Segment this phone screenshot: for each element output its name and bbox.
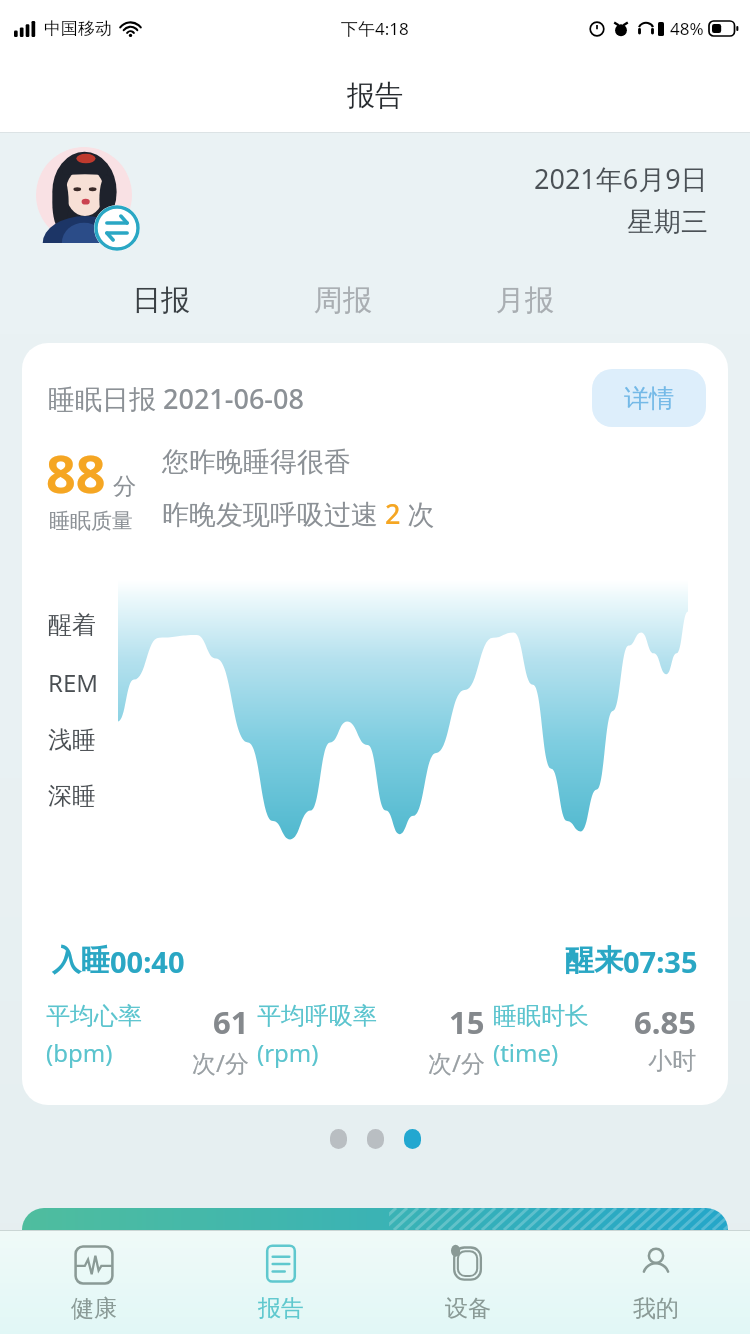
staticText: 61	[213, 1001, 249, 1043]
button[interactable]: 日报	[126, 275, 196, 325]
staticText: 深睡	[48, 781, 96, 811]
staticText: 醒来	[565, 942, 623, 979]
staticText: 次/分	[428, 1046, 485, 1079]
button[interactable]: 我的	[562, 1231, 750, 1334]
staticText: 07:35	[623, 942, 698, 981]
staticText: 48%	[670, 17, 704, 40]
staticText: 平均心率	[46, 1001, 142, 1031]
button[interactable]: 月报	[490, 275, 560, 325]
staticText: 下午4:18	[341, 17, 409, 40]
button[interactable]: 健康	[0, 1231, 187, 1334]
button[interactable]: 周报	[308, 275, 378, 325]
button[interactable]	[22, 1208, 728, 1230]
staticText: 浅睡	[48, 725, 96, 755]
staticText: 88	[46, 437, 106, 508]
staticText: 您昨晚睡得很香	[162, 445, 351, 479]
staticText: 我的	[633, 1294, 679, 1323]
staticText: 周报	[314, 282, 372, 319]
staticText: 健康	[71, 1294, 117, 1323]
button[interactable]: 设备	[374, 1231, 562, 1334]
staticText: 月报	[496, 282, 554, 319]
staticText: 设备	[445, 1294, 491, 1323]
staticText: 入睡	[52, 942, 110, 979]
staticText: 分	[113, 472, 136, 501]
staticText: (time)	[493, 1036, 559, 1069]
staticText: 平均呼吸率	[257, 1001, 377, 1031]
staticText: 中国移动	[44, 18, 112, 39]
staticText: 00:40	[110, 942, 185, 981]
staticText: 次/分	[192, 1046, 249, 1079]
button[interactable]: 详情	[592, 369, 706, 427]
staticText: 睡眠日报 2021-06-08	[48, 380, 304, 417]
staticText: REM	[48, 666, 99, 699]
staticText: 睡眠时长	[493, 1001, 589, 1031]
staticText: 15	[449, 1001, 485, 1043]
staticText: 报告	[258, 1294, 304, 1323]
button[interactable]	[330, 1129, 347, 1149]
staticText: (rpm)	[257, 1036, 319, 1069]
button[interactable]	[367, 1129, 384, 1149]
staticText: 小时	[648, 1046, 696, 1076]
staticText: 报告	[347, 78, 403, 113]
staticText: 6.85	[634, 1001, 696, 1043]
staticText: 日报	[132, 282, 190, 319]
staticText: 睡眠质量	[49, 508, 133, 534]
staticText: (bpm)	[46, 1036, 113, 1069]
button[interactable]: 切换用户	[36, 147, 140, 251]
button[interactable]	[404, 1129, 421, 1149]
staticText: 昨晚发现呼吸过速 2 次	[162, 495, 435, 532]
staticText: 醒着	[48, 610, 96, 640]
button[interactable]: 睡眠日报 2021-06-08	[22, 343, 728, 1105]
staticText: 2021年6月9日	[534, 160, 708, 197]
staticText: 星期三	[627, 205, 708, 239]
button[interactable]: 报告	[187, 1231, 374, 1334]
staticText: 详情	[624, 383, 674, 414]
